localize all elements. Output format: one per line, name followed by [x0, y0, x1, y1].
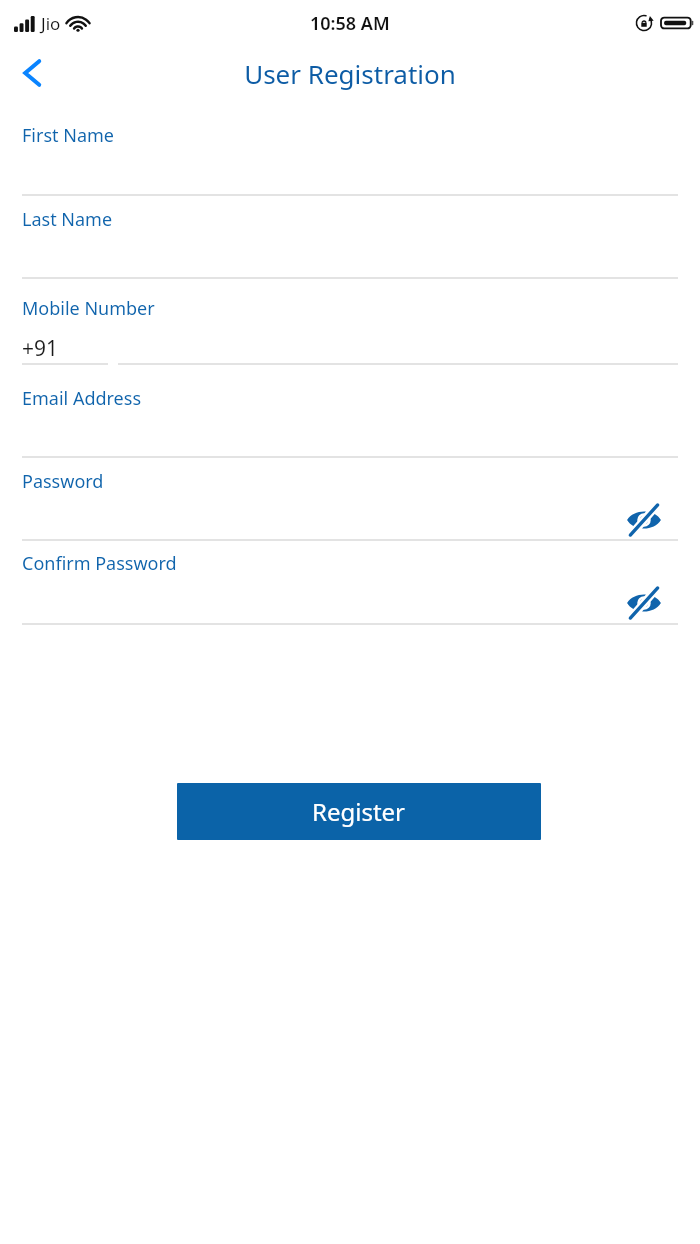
staticText: User Registration: [244, 56, 456, 91]
button[interactable]: [22, 495, 678, 539]
button[interactable]: Show password: [622, 498, 666, 542]
button[interactable]: [22, 326, 108, 366]
staticText: Mobile Number: [22, 296, 155, 321]
staticText: +91: [22, 334, 59, 363]
staticText: Confirm Password: [22, 551, 177, 576]
button[interactable]: [118, 326, 678, 366]
staticText: First Name: [22, 123, 114, 148]
staticText: Register: [312, 795, 406, 828]
staticText: 10:58 AM: [310, 11, 390, 36]
button[interactable]: Back: [8, 49, 56, 97]
button[interactable]: Register: [177, 783, 541, 840]
button[interactable]: [22, 577, 678, 621]
button[interactable]: Show password: [622, 581, 666, 625]
staticText: Last Name: [22, 207, 113, 232]
staticText: Jio: [41, 12, 61, 35]
staticText: Password: [22, 469, 104, 494]
staticText: Email Address: [22, 386, 142, 411]
